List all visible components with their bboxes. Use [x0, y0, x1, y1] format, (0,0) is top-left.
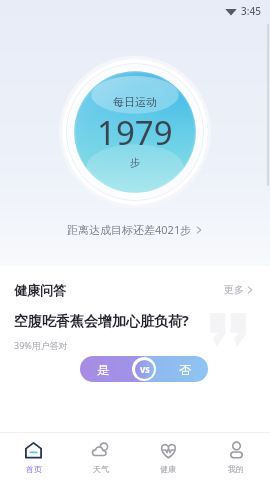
- staticText: 更多: [224, 283, 244, 296]
- staticText: 天气: [93, 464, 109, 474]
- staticText: 首页: [26, 464, 42, 474]
- button[interactable]: 距离达成目标还差4021步: [59, 219, 211, 240]
- button[interactable]: 健康: [134, 433, 202, 480]
- staticText: 1979: [97, 110, 173, 155]
- button[interactable]: 空腹吃香蕉会增加心脏负荷?: [0, 307, 270, 415]
- button[interactable]: 天气: [67, 433, 134, 480]
- button[interactable]: 否: [144, 356, 208, 382]
- button[interactable]: 更多: [220, 280, 258, 299]
- staticText: 健康: [160, 464, 176, 474]
- staticText: 我的: [228, 464, 244, 474]
- staticText: 距离达成目标还差4021步: [67, 222, 192, 237]
- staticText: 否: [179, 362, 191, 377]
- button[interactable]: 是: [80, 356, 144, 382]
- staticText: 每日运动: [113, 95, 157, 109]
- button[interactable]: Daily steps: [59, 56, 211, 208]
- staticText: 39%用户答对: [14, 339, 68, 351]
- staticText: 健康问答: [14, 282, 66, 298]
- staticText: 是: [97, 362, 109, 377]
- staticText: 3:45: [241, 4, 261, 18]
- staticText: VS: [140, 364, 150, 375]
- staticText: 步: [130, 156, 140, 169]
- button[interactable]: 我的: [202, 433, 270, 480]
- button[interactable]: 首页: [0, 433, 67, 480]
- staticText: 空腹吃香蕉会增加心脏负荷?: [14, 311, 189, 330]
